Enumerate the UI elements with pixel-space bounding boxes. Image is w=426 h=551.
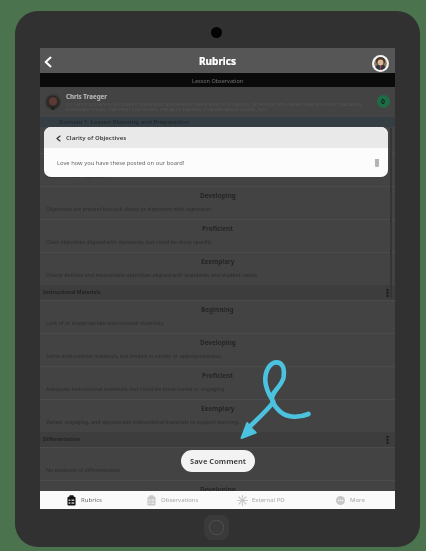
staticText: Proficient [202, 224, 234, 233]
staticText: Beginning [201, 452, 234, 461]
button[interactable]: Beginning [40, 300, 395, 333]
button[interactable]: Exemplary [40, 399, 395, 432]
button[interactable]: Beginning [40, 153, 395, 186]
button[interactable]: Chris Traeger [40, 87, 395, 116]
staticText: Exemplary [201, 404, 235, 413]
button[interactable]: Rubrics [40, 491, 128, 509]
staticText: Adequate instructional materials, but co… [46, 385, 226, 392]
button[interactable]: Proficient [40, 219, 395, 252]
staticText: Instructional Materials [43, 289, 101, 296]
staticText: More [350, 496, 365, 504]
staticText: Beginning [201, 305, 234, 314]
staticText: Love how you have these posted on our bo… [57, 159, 185, 167]
staticText: Developing [200, 191, 236, 200]
button[interactable]: Delete comment [375, 159, 379, 167]
button[interactable]: Developing [40, 186, 395, 219]
button[interactable]: Developing [40, 480, 395, 513]
staticText: Lack of or inappropriate instructional m… [46, 319, 165, 326]
staticText: Differentiation [43, 436, 81, 443]
staticText: Chris Traeger [66, 92, 107, 100]
staticText: Proficient [202, 371, 234, 380]
button[interactable]: Instructional Materials [40, 285, 395, 300]
button[interactable]: Back [40, 48, 56, 73]
button[interactable]: External PD [217, 491, 306, 509]
staticText: 0 [381, 97, 386, 107]
button[interactable]: More [306, 491, 395, 509]
staticText: Lesson Observation [192, 77, 244, 84]
staticText: Clear objectives aligned with standards,… [46, 238, 213, 245]
staticText: Lack of a clear objective. [46, 172, 107, 179]
button[interactable]: Proficient [40, 366, 395, 399]
staticText: Domain 1: Lesson Planning and Preparatio… [59, 118, 189, 126]
staticText: Rubrics [199, 54, 237, 68]
staticText: Save Comment [190, 456, 247, 466]
button[interactable]: Beginning [40, 447, 395, 480]
button[interactable]: Profile [372, 55, 389, 72]
staticText: Objectives are present but lack clarity … [46, 205, 213, 212]
staticText: Exemplary [201, 257, 235, 266]
staticText: No evidence of differentiation. [46, 466, 122, 473]
staticText: External PD [252, 496, 285, 504]
button[interactable]: Back [52, 132, 64, 144]
staticText: Observations [161, 496, 199, 504]
button[interactable]: 0 [377, 95, 390, 108]
button[interactable]: Observations [128, 491, 217, 509]
staticText: Clearly defined and measurable objective… [46, 271, 259, 278]
staticText: Varied, engaging, and appropriate instru… [46, 418, 240, 425]
staticText: Clarity of Objectives [66, 134, 127, 142]
button[interactable]: Differentiation [40, 432, 395, 447]
button[interactable]: Exemplary [40, 252, 395, 285]
button[interactable]: Domain 1: Lesson Planning and Preparatio… [40, 117, 395, 127]
staticText: Developing [200, 485, 236, 494]
staticText: TTC GROUP, ELLEVATION, GGL COHORT, GREEN… [66, 102, 362, 107]
staticText: Developing [200, 338, 236, 347]
staticText: ELEMENTARY SCHOOL, OAK STREET HIGH SCHOO… [66, 107, 267, 112]
staticText: Rubrics [81, 496, 102, 504]
staticText: Some attempts at differentiation. [46, 499, 129, 506]
button[interactable]: Save Comment [181, 450, 255, 472]
button[interactable]: Developing [40, 333, 395, 366]
staticText: Some instructional materials, but limite… [46, 352, 222, 359]
